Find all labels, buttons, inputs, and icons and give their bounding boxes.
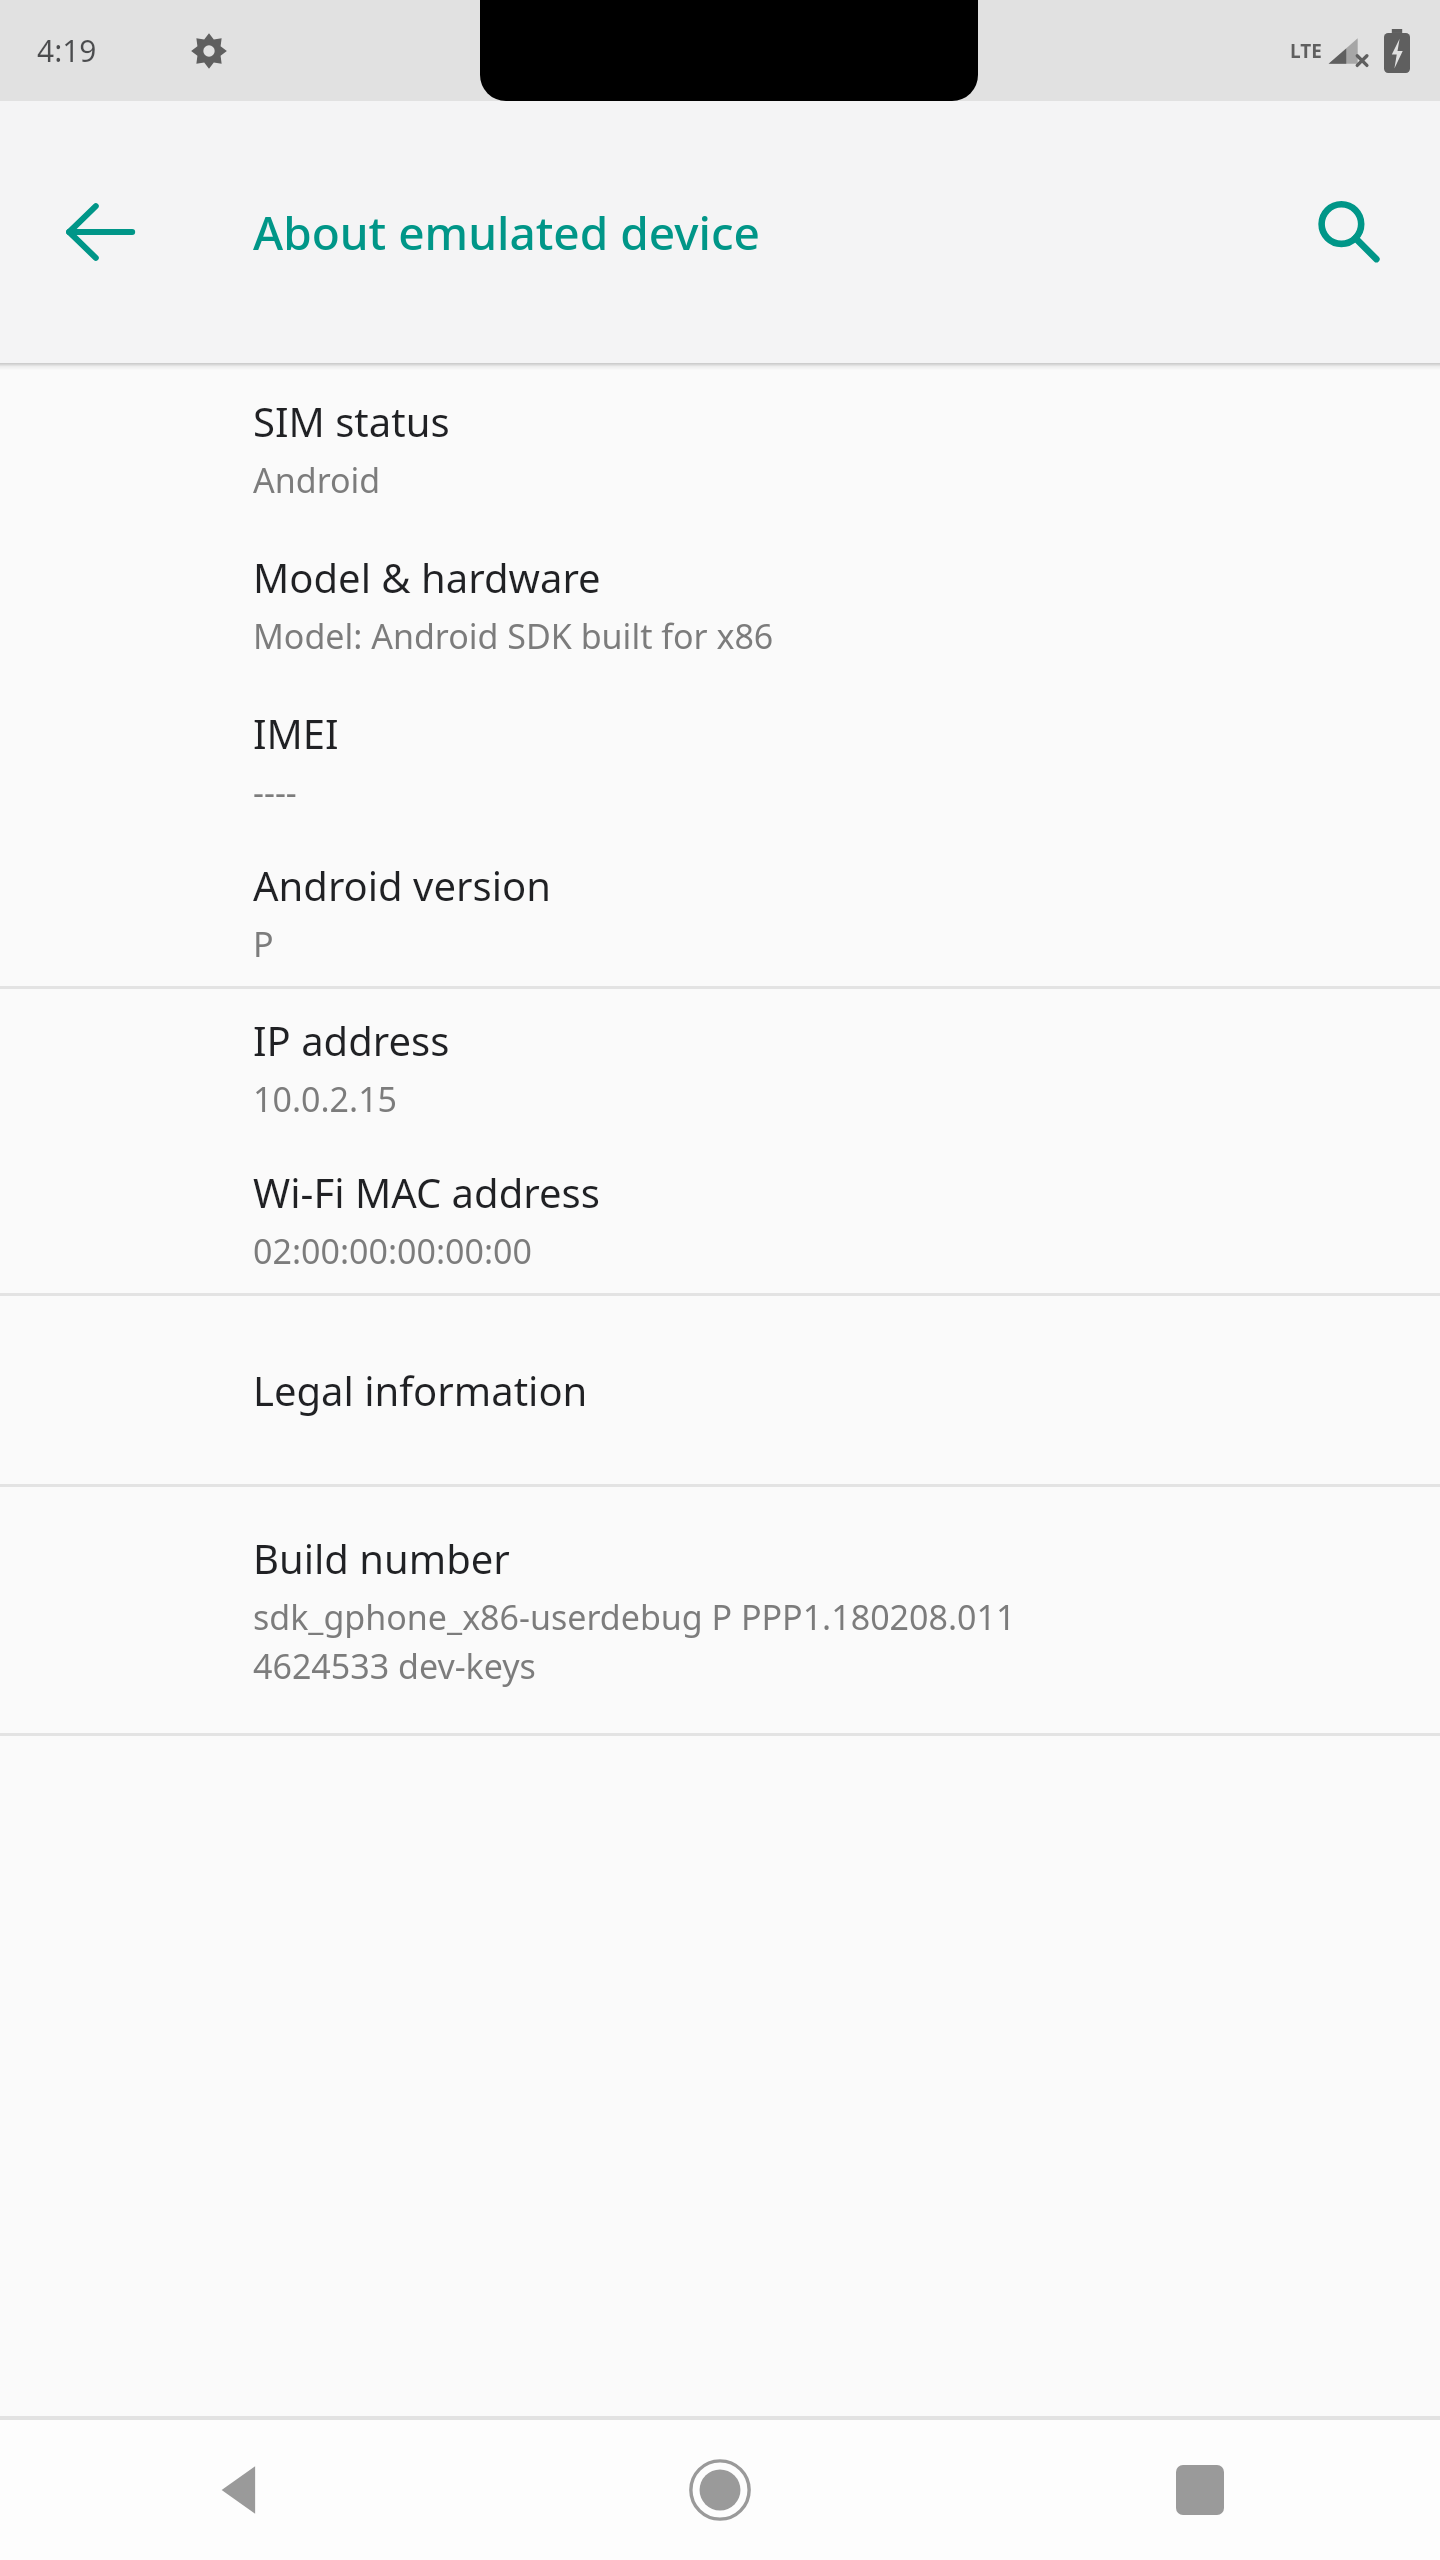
- staticText: sdk_gphone_x86-userdebug P PPP1.180208.0…: [253, 1594, 1016, 1689]
- staticText: Android: [253, 457, 381, 503]
- button[interactable]: Model & hardware: [0, 526, 1440, 682]
- button[interactable]: IMEI: [0, 682, 1440, 838]
- staticText: 10.0.2.15: [253, 1076, 398, 1122]
- button[interactable]: Back: [42, 174, 158, 290]
- staticText: Wi-Fi MAC address: [253, 1165, 600, 1219]
- staticText: 4:19: [37, 30, 97, 71]
- staticText: Build number: [253, 1531, 510, 1585]
- staticText: Model: Android SDK built for x86: [253, 613, 774, 659]
- button[interactable]: Back: [0, 2420, 480, 2560]
- button[interactable]: Search: [1290, 174, 1406, 290]
- staticText: Model & hardware: [253, 550, 601, 604]
- button[interactable]: Wi-Fi MAC address: [0, 1145, 1440, 1293]
- staticText: Legal information: [253, 1363, 588, 1417]
- staticText: SIM status: [253, 394, 450, 448]
- staticText: ----: [253, 769, 297, 815]
- button[interactable]: Build number: [0, 1487, 1440, 1733]
- staticText: P: [253, 921, 274, 967]
- staticText: 02:00:00:00:00:00: [253, 1228, 532, 1274]
- button[interactable]: Android version: [0, 838, 1440, 986]
- button[interactable]: SIM status: [0, 370, 1440, 526]
- staticText: LTE: [1290, 38, 1322, 64]
- staticText: IMEI: [253, 706, 339, 760]
- button[interactable]: Legal information: [0, 1296, 1440, 1484]
- button[interactable]: Recent apps: [960, 2420, 1440, 2560]
- staticText: About emulated device: [253, 201, 760, 264]
- button[interactable]: Home: [480, 2420, 960, 2560]
- staticText: Android version: [253, 858, 551, 912]
- staticText: IP address: [253, 1013, 450, 1067]
- button[interactable]: IP address: [0, 989, 1440, 1145]
